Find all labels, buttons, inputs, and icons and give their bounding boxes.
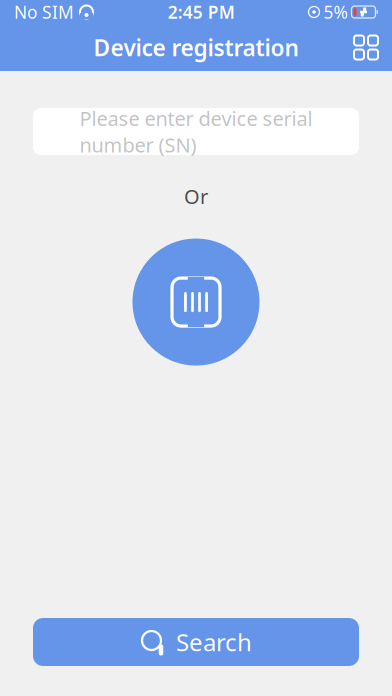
staticText: Or — [184, 183, 208, 210]
button[interactable]: Grid view — [340, 25, 392, 69]
button[interactable]: Search — [33, 618, 359, 666]
staticText: Please enter device serial number (SN) — [79, 105, 312, 158]
staticText: Search — [176, 626, 252, 658]
staticText: No SIM — [14, 0, 74, 23]
staticText: 2:45 PM — [168, 0, 235, 23]
button[interactable]: Scan barcode — [132, 239, 259, 366]
staticText: Device registration — [93, 32, 298, 62]
staticText: 5% — [323, 0, 347, 23]
button[interactable]: Please enter device serial number (SN) — [33, 108, 359, 155]
